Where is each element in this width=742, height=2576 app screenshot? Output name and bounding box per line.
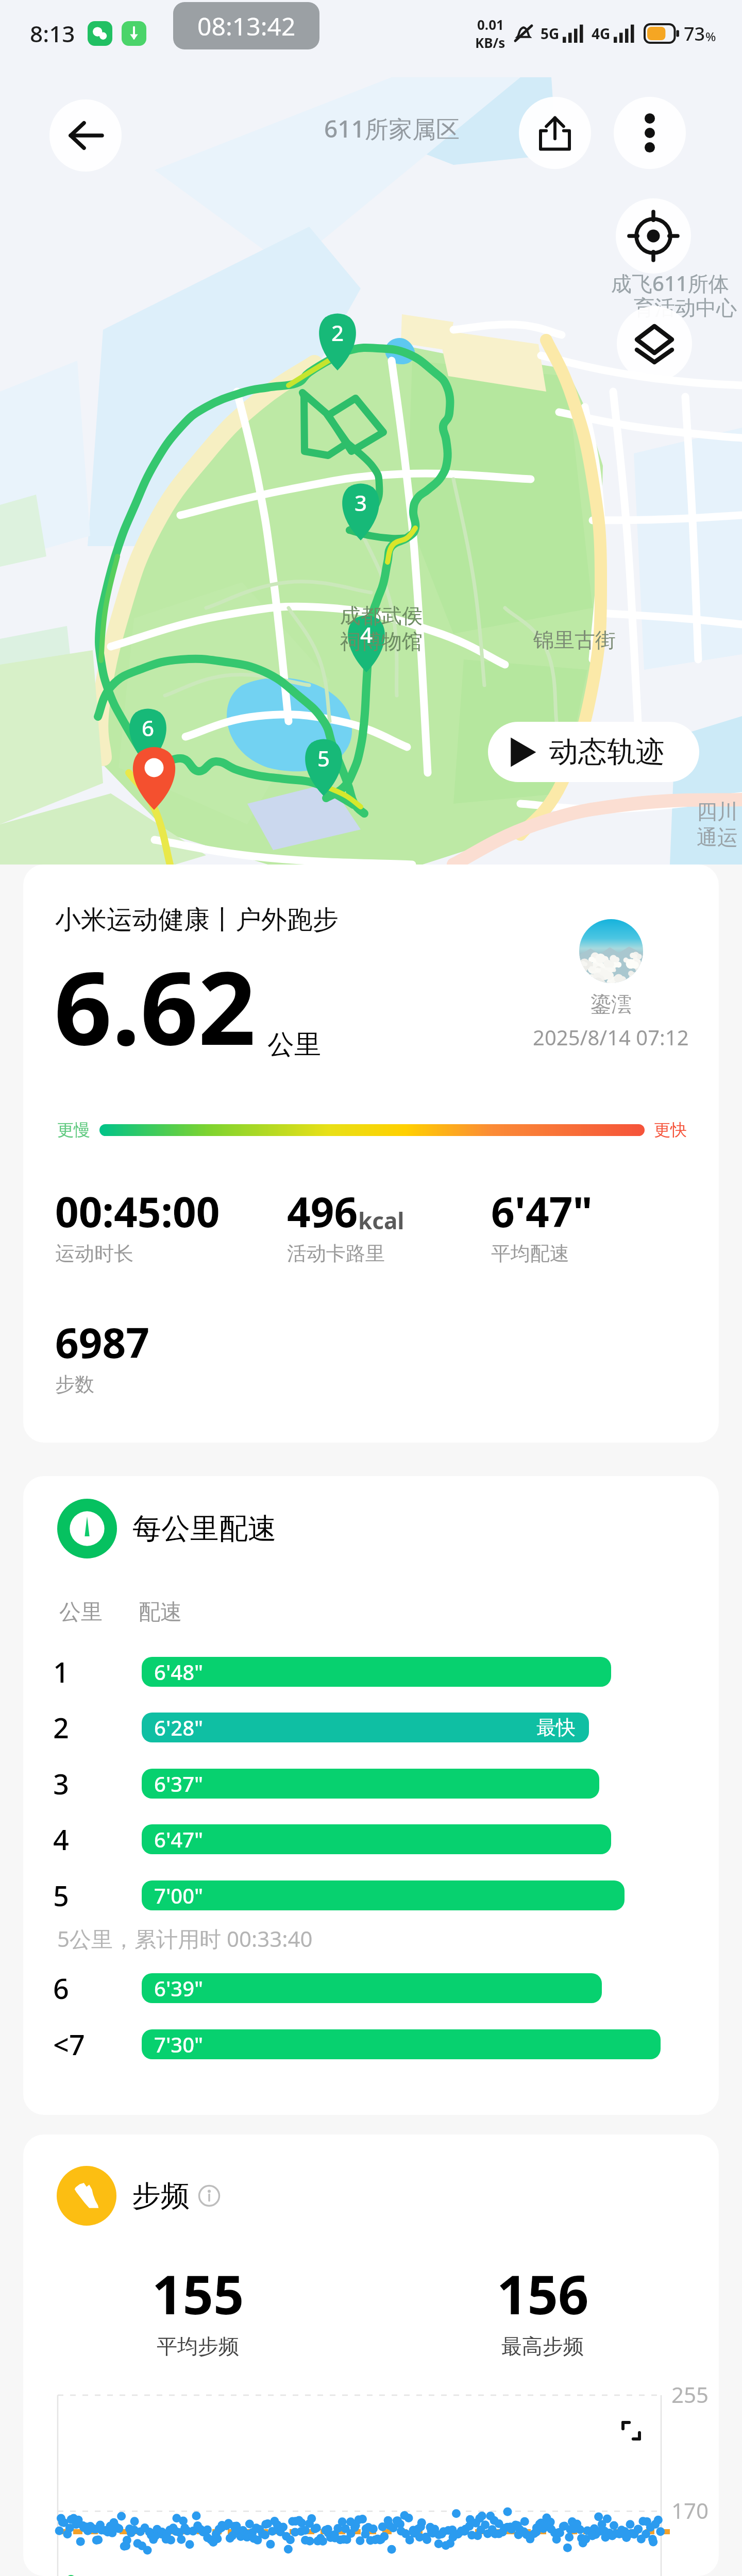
staticText: 156 [497,2257,589,2330]
button[interactable]: Map layers [617,306,692,381]
staticText: 00:45:00 [55,1183,220,1239]
staticText: 运动时长 [55,1241,133,1266]
staticText: 公里 [267,1028,321,1062]
staticText: 6'48" [154,1658,204,1686]
button[interactable]: More options [614,97,686,169]
staticText: 7'00" [154,1882,204,1909]
staticText: 7'30" [154,2030,204,2058]
staticText: 6 [142,713,155,742]
staticText: 73 [684,21,705,46]
staticText: 2 [53,1708,69,1747]
staticText: 活动卡路里 [287,1241,385,1266]
staticText: 成都武侯 [340,603,423,629]
staticText: 170 [671,2496,709,2525]
staticText: 3 [53,1765,69,1803]
staticText: 育活动中心 [634,295,737,320]
staticText: 5G [541,24,560,43]
staticText: 0.01 [477,15,504,33]
staticText: kcal [358,1205,404,1236]
staticText: 6'39" [154,1974,204,2002]
button[interactable]: Share [519,97,591,169]
staticText: 四川 [697,799,738,824]
staticText: 6.62 [54,937,256,1074]
staticText: % [705,28,716,45]
staticText: 1 [53,1653,69,1691]
staticText: KB/s [475,33,505,52]
staticText: 平均配速 [491,1241,569,1266]
staticText: 锦里古街 [533,627,616,653]
staticText: 6'47" [154,1825,204,1853]
button[interactable]: Back [49,99,122,172]
staticText: 4 [360,620,373,649]
staticText: 255 [671,2380,709,2409]
staticText: 每公里配速 [132,1511,277,1547]
staticText: 5公里，累计用时 00:33:40 [57,1924,313,1953]
staticText: <7 [53,2025,85,2063]
staticText: 496 [287,1183,358,1239]
staticText: 鎏澐 [591,991,632,1017]
staticText: 最快 [536,1715,576,1740]
button[interactable]: 动态轨迹 [488,722,699,782]
staticText: 6'47" [491,1183,593,1239]
staticText: 配速 [139,1599,182,1626]
staticText: 平均步频 [157,2333,239,2359]
staticText: 6 [53,1969,69,2007]
staticText: 通运 [697,824,738,850]
staticText: 祠博物馆 [340,629,423,654]
staticText: 5 [53,1876,69,1914]
staticText: 公里 [59,1599,103,1626]
staticText: 2025/8/14 07:12 [533,1023,689,1051]
staticText: 更快 [654,1120,687,1140]
button[interactable]: Expand chart [611,2410,652,2451]
staticText: 611所家属区 [324,112,460,145]
staticText: 8:13 [30,18,75,49]
staticText: 5 [317,743,330,773]
staticText: 4 [53,1820,69,1858]
staticText: 成飞611所体 [611,269,729,297]
staticText: 155 [152,2257,244,2330]
staticText: 6'37" [154,1770,204,1798]
staticText: 小米运动健康丨户外跑步 [55,904,339,936]
staticText: 6'28" [154,1714,204,1741]
staticText: 6987 [55,1314,150,1370]
staticText: 3 [355,488,367,517]
staticText: 4G [592,24,611,43]
staticText: 08:13:42 [197,9,296,43]
staticText: 动态轨迹 [549,734,665,770]
button[interactable]: My location [616,198,691,274]
staticText: 步数 [55,1372,94,1397]
staticText: 最高步频 [501,2333,584,2359]
staticText: 步频 [132,2178,190,2214]
staticText: 更慢 [57,1120,90,1140]
staticText: 2 [331,318,344,347]
